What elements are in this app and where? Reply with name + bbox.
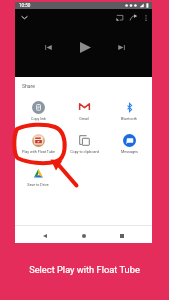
button[interactable]: Bluetooth [106,99,152,124]
staticText: Select Play with Float Tube [29,264,140,275]
button[interactable]: Play [74,36,96,58]
button[interactable]: Copy link [15,99,61,124]
button[interactable]: Play with Float Tube [15,132,61,157]
staticText: Messages [121,150,138,154]
staticText: Bluetooth [121,117,137,121]
staticText: Copy link [31,117,46,121]
button[interactable]: Messages [106,132,152,157]
button[interactable]: Recents [114,228,130,244]
button[interactable]: Share [126,10,140,24]
staticText: 10:50 [19,3,31,8]
button[interactable]: Cast [112,10,126,24]
button[interactable]: Gmail [61,99,107,124]
button[interactable]: Previous [39,38,57,56]
staticText: Share [22,83,35,89]
button[interactable]: Copy to clipboard [61,132,107,157]
staticText: Save to Drive [27,183,49,187]
staticText: Play with Float Tube [22,150,55,154]
staticText: Gmail [79,117,89,121]
button[interactable]: More options [140,12,151,23]
button[interactable]: Home [76,228,92,244]
button[interactable]: Next [112,38,130,56]
button[interactable]: Back [37,228,53,244]
button[interactable]: Collapse player [17,10,32,25]
button[interactable]: Save to Drive [15,165,61,190]
staticText: Copy to clipboard [70,150,99,154]
